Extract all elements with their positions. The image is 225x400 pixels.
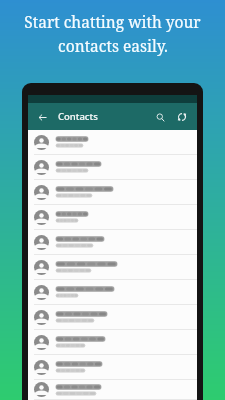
button[interactable]: [28, 180, 197, 205]
staticText: Contacts: [58, 110, 98, 123]
button[interactable]: [28, 305, 197, 330]
button[interactable]: [28, 130, 197, 155]
button[interactable]: Search: [150, 107, 170, 127]
button[interactable]: [28, 355, 197, 380]
button[interactable]: Refresh: [172, 107, 192, 127]
staticText: contacts easily.: [58, 35, 168, 56]
button[interactable]: [28, 255, 197, 280]
button[interactable]: Back: [33, 108, 51, 126]
button[interactable]: [28, 280, 197, 305]
button[interactable]: [28, 230, 197, 255]
button[interactable]: [28, 205, 197, 230]
button[interactable]: [28, 380, 197, 400]
staticText: Start chatting with your: [24, 11, 201, 32]
button[interactable]: [28, 330, 197, 355]
button[interactable]: [28, 155, 197, 180]
